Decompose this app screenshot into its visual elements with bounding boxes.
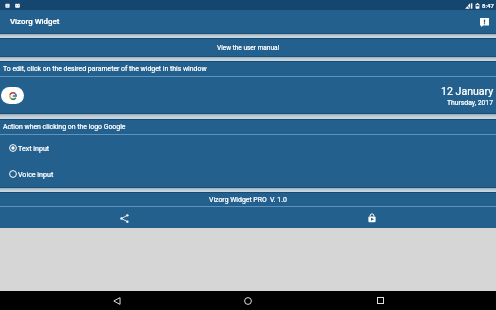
staticText: 8:47 <box>482 2 494 9</box>
button[interactable]: View the user manual <box>0 39 496 56</box>
staticText: Action when clicking on the logo Google <box>3 123 126 131</box>
button[interactable]: Google <box>1 87 24 104</box>
button[interactable]: Home <box>233 291 263 310</box>
button[interactable]: Text input <box>0 135 496 161</box>
staticText: Vizorg Widget <box>10 17 60 26</box>
staticText: Vizorg Widget PRO V. 1.0 <box>209 196 287 204</box>
button[interactable]: Feedback <box>476 14 492 30</box>
staticText: Voice input <box>18 170 54 178</box>
staticText: 12 January <box>441 85 494 97</box>
staticText: Thursday, 2017 <box>447 99 494 107</box>
button[interactable]: Recents <box>365 291 395 310</box>
button[interactable]: Share <box>114 208 134 228</box>
button[interactable]: Google Play <box>362 208 382 228</box>
button[interactable]: Vizorg Widget PRO V. 1.0 <box>0 193 496 206</box>
button[interactable]: Back <box>102 291 132 310</box>
staticText: To edit, click on the desired parameter … <box>3 65 207 73</box>
button[interactable]: Voice input <box>0 161 496 187</box>
staticText: View the user manual <box>217 44 280 52</box>
staticText: Text input <box>18 144 50 152</box>
